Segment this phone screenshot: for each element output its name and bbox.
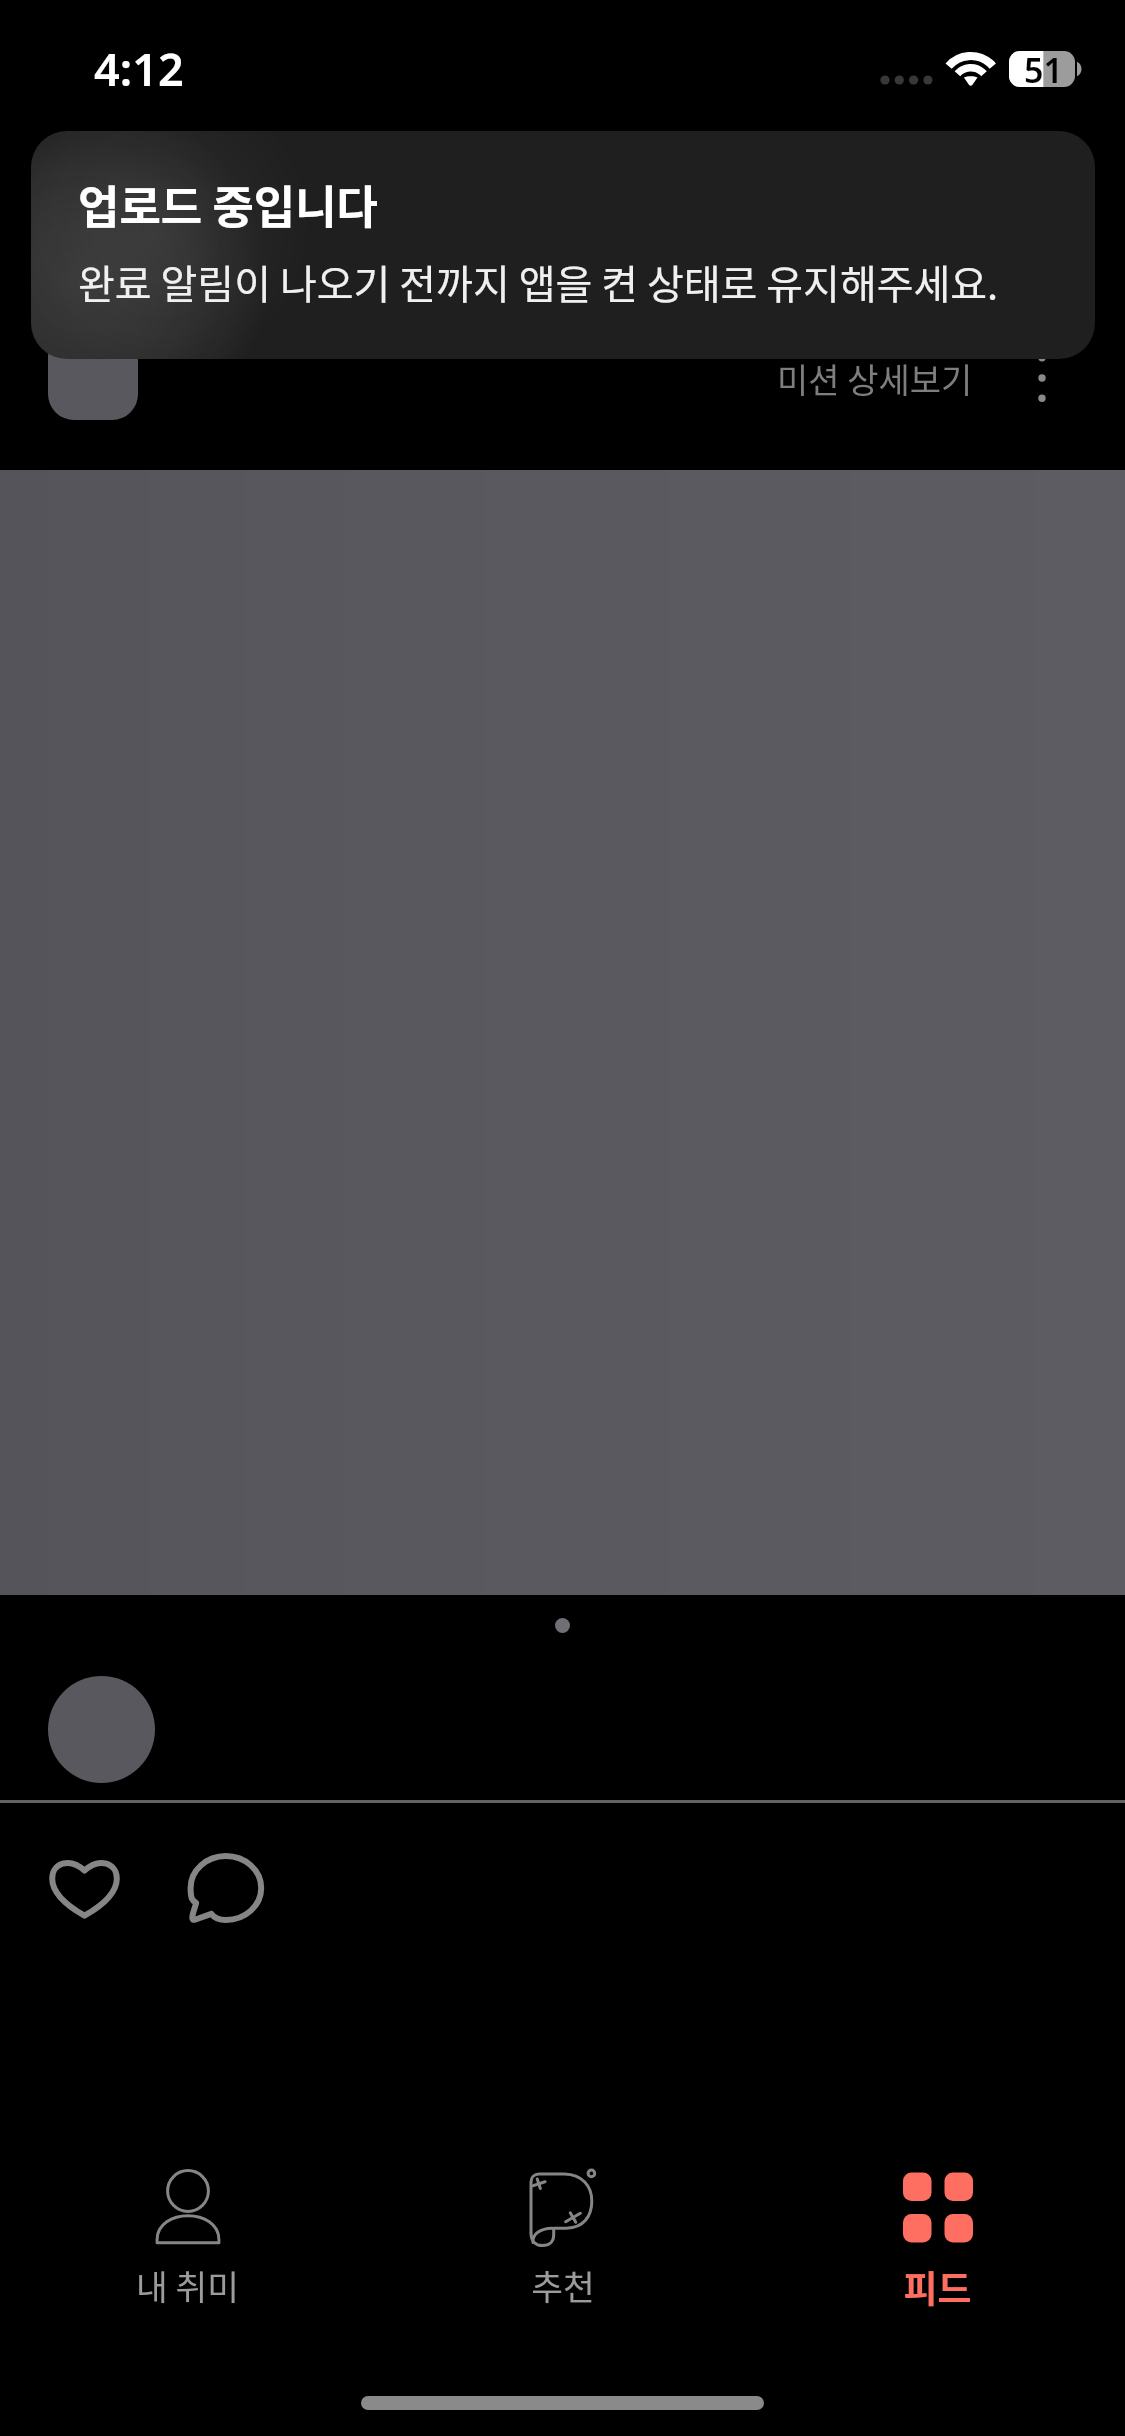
staticText: 미션 상세보기 [777,354,973,403]
button[interactable]: 좋아요 [14,1824,154,1952]
staticText: 추천 [531,2260,595,2310]
button[interactable]: 추천 [375,2150,750,2310]
button[interactable]: 프로필 이미지 [48,330,138,420]
button[interactable]: 피드 [750,2150,1125,2314]
button[interactable]: 댓글 [156,1826,296,1954]
staticText: 내 취미 [136,2260,239,2310]
button[interactable]: 업로드 중 알림 [31,131,1095,359]
staticText: 업로드 중입니다 [78,172,379,237]
staticText: 4:12 [94,38,184,99]
button[interactable]: 미션 상세보기 [760,340,990,416]
staticText: 51 [1024,47,1063,93]
staticText: 피드 [903,2260,972,2314]
button[interactable]: 더보기 [1008,340,1076,416]
button[interactable]: 프로필 [48,1676,155,1783]
button[interactable]: 내 취미 [0,2150,375,2310]
staticText: 완료 알림이 나오기 전까지 앱을 켠 상태로 유지해주세요. [78,253,999,311]
